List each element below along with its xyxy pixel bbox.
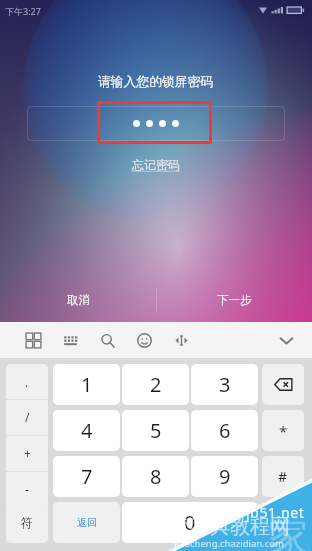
staticText: 查字典教程网 xyxy=(170,514,290,539)
staticText: # xyxy=(278,467,288,486)
staticText: 6 xyxy=(219,417,231,444)
staticText: 下一步 xyxy=(217,293,252,307)
button[interactable]: 符 xyxy=(6,502,48,543)
button[interactable]: / xyxy=(6,399,48,435)
button[interactable]: Keyboard layout xyxy=(15,322,51,358)
button[interactable]: Hide keyboard xyxy=(266,322,306,358)
button[interactable]: 3 xyxy=(191,364,258,405)
button[interactable]: Search xyxy=(89,322,125,358)
staticText: / xyxy=(25,409,30,425)
button[interactable]: 取消 xyxy=(0,282,156,318)
staticText: 家 xyxy=(268,512,308,551)
staticText: 7 xyxy=(81,463,93,490)
button[interactable]: . xyxy=(6,364,48,399)
button[interactable]: Enter xyxy=(262,502,304,543)
button[interactable]: 9 xyxy=(191,456,258,497)
staticText: jb51.net xyxy=(246,503,305,522)
button[interactable]: # xyxy=(262,456,304,497)
staticText: 8 xyxy=(150,463,162,490)
button[interactable]: Move cursor xyxy=(163,322,199,358)
staticText: 3 xyxy=(219,371,231,398)
staticText: 4 xyxy=(81,417,93,444)
button[interactable]: 7 xyxy=(53,456,120,497)
staticText: jiaocheng.chazidian.com xyxy=(174,537,284,550)
staticText: 5 xyxy=(150,417,162,444)
button[interactable]: + xyxy=(6,435,48,471)
button[interactable]: 返回 xyxy=(53,502,120,543)
button[interactable]: 忘记密码 xyxy=(132,157,180,172)
button[interactable]: 5 xyxy=(122,410,189,451)
button[interactable]: 0 xyxy=(122,502,258,543)
staticText: 2 xyxy=(150,371,162,398)
button[interactable]: 2 xyxy=(122,364,189,405)
button[interactable]: 1 xyxy=(53,364,120,405)
staticText: 下午3:27 xyxy=(5,5,41,17)
staticText: 1 xyxy=(81,371,93,398)
button[interactable]: 6 xyxy=(191,410,258,451)
staticText: - xyxy=(25,481,29,497)
button[interactable]: Emoji xyxy=(126,322,162,358)
staticText: . xyxy=(25,374,29,390)
button[interactable]: 下一步 xyxy=(156,282,312,318)
button[interactable]: * xyxy=(262,410,304,451)
button[interactable]: - xyxy=(6,471,48,507)
staticText: 返回 xyxy=(77,516,97,529)
staticText: 忘记密码 xyxy=(132,157,180,172)
button[interactable]: Keyboard xyxy=(52,322,88,358)
button[interactable]: 8 xyxy=(122,456,189,497)
staticText: 请输入您的锁屏密码 xyxy=(98,74,214,90)
button[interactable]: Backspace xyxy=(262,364,304,405)
button[interactable] xyxy=(27,106,285,141)
button[interactable]: 4 xyxy=(53,410,120,451)
staticText: + xyxy=(24,445,31,461)
staticText: 符 xyxy=(21,515,33,530)
staticText: 取消 xyxy=(67,293,90,307)
staticText: * xyxy=(279,421,288,441)
staticText: 0 xyxy=(184,509,196,536)
staticText: 9 xyxy=(219,463,231,490)
